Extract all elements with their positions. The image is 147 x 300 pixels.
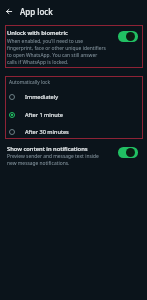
staticText: Immediately — [25, 93, 59, 101]
staticText: App lock — [20, 6, 53, 17]
staticText: Preview sender and message text inside n… — [7, 153, 106, 167]
staticText: After 30 minutes — [25, 128, 69, 136]
staticText: Automatically lock — [9, 79, 50, 86]
button[interactable]: Unlock with biometric — [0, 25, 147, 67]
button[interactable]: Back — [1, 4, 16, 19]
staticText: Unlock with biometric — [7, 29, 68, 37]
button[interactable]: Immediately — [0, 89, 147, 105]
button[interactable]: After 30 minutes — [0, 124, 147, 140]
staticText: When enabled, you'll need to use fingerp… — [7, 38, 106, 66]
staticText: After 1 minute — [25, 111, 63, 119]
button[interactable]: Show content in notifications — [118, 147, 138, 158]
button[interactable]: After 1 minute — [0, 107, 147, 123]
staticText: Show content in notifications — [7, 145, 88, 153]
button[interactable]: Show content in notifications — [0, 143, 147, 165]
button[interactable]: Unlock with biometric — [118, 31, 138, 42]
